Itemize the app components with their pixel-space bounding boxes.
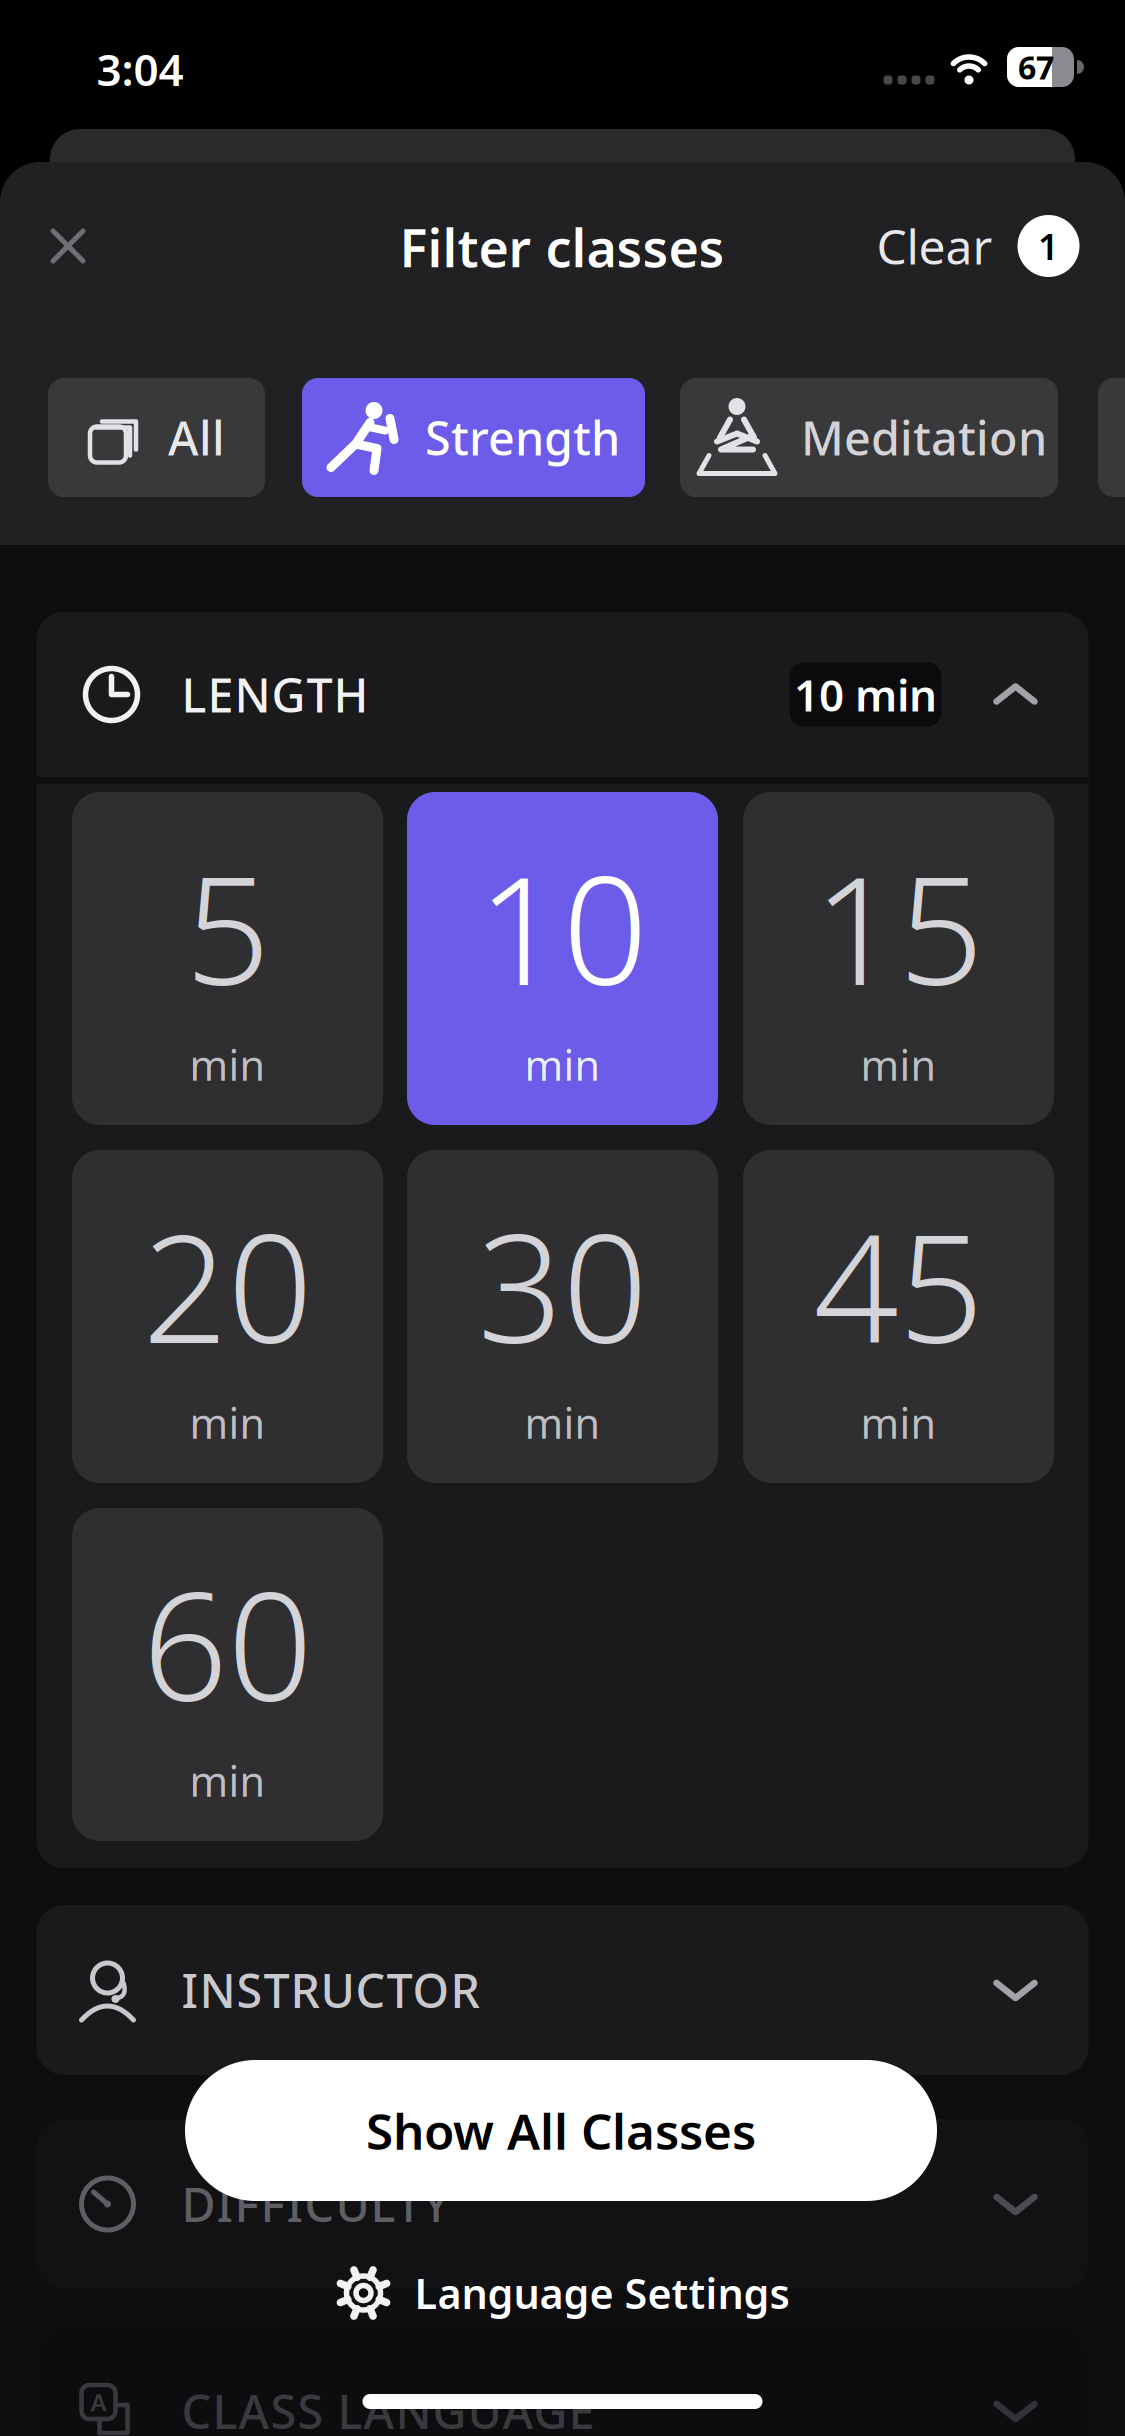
button[interactable]: Strength [302,378,645,497]
staticText: INSTRUCTOR [181,1959,479,2021]
staticText: 1 [1038,222,1059,270]
button[interactable]: Close [46,224,90,268]
staticText: 5 [185,828,270,1026]
staticText: min [524,1037,600,1092]
staticText: 60 [142,1544,312,1742]
button[interactable]: 45 [743,1150,1054,1483]
button[interactable]: 20 [72,1150,383,1483]
staticText: 10 [477,828,647,1026]
button[interactable]: 30 [407,1150,718,1483]
button[interactable]: 5 [72,792,383,1125]
staticText: min [189,1753,265,1808]
staticText: DIFFICULTY [181,2173,449,2235]
staticText: min [189,1395,265,1450]
button[interactable]: 60 [72,1508,383,1841]
button[interactable]: Clear [876,214,1079,278]
button[interactable]: DIFFICULTY [36,2119,1088,2289]
staticText: CLASS LANGUAGE [181,2380,594,2436]
staticText: 15 [813,828,983,1026]
staticText: 67 [1018,46,1054,88]
staticText: 20 [142,1186,312,1384]
staticText: 30 [477,1186,647,1384]
staticText: Clear [876,214,992,278]
staticText: min [860,1037,936,1092]
button[interactable]: All [48,378,265,497]
button[interactable]: 10 [407,792,718,1125]
button[interactable]: Language Settings [334,2264,789,2322]
staticText: min [524,1395,600,1450]
button[interactable]: Meditation [680,378,1058,497]
button[interactable]: 15 [743,792,1054,1125]
staticText: Strength [425,406,620,468]
staticText: Meditation [801,406,1047,468]
button[interactable]: Show All Classes [185,2060,937,2201]
staticText: 45 [813,1186,983,1384]
staticText: Language Settings [414,2266,789,2320]
button[interactable]: More categories [1098,378,1125,497]
staticText: min [860,1395,936,1450]
staticText: Filter classes [399,212,724,282]
button[interactable]: A [36,2326,1088,2436]
button[interactable]: INSTRUCTOR [36,1905,1088,2075]
staticText: A [90,2386,106,2418]
staticText: 3:04 [96,40,183,98]
button[interactable]: LENGTH [36,612,1088,777]
staticText: LENGTH [181,663,368,725]
staticText: Show All Classes [366,2098,756,2163]
staticText: min [189,1037,265,1092]
staticText: 10 min [794,665,937,724]
staticText: All [168,406,225,468]
